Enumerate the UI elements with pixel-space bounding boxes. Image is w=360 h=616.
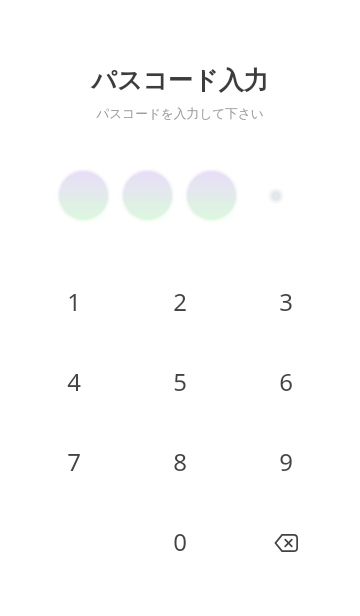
button[interactable]: 4 [21, 341, 127, 421]
staticText: 2 [173, 285, 187, 318]
staticText: 0 [173, 525, 187, 558]
staticText: 6 [279, 365, 293, 398]
button[interactable]: 2 [127, 261, 233, 341]
button[interactable]: 9 [233, 421, 339, 501]
button[interactable]: 6 [233, 341, 339, 421]
button[interactable]: 8 [127, 421, 233, 501]
staticText: 5 [173, 365, 187, 398]
button[interactable]: 7 [21, 421, 127, 501]
staticText: パスコード入力 [91, 65, 269, 96]
staticText: 7 [67, 445, 81, 478]
button[interactable]: Backspace [233, 501, 339, 581]
button[interactable]: 5 [127, 341, 233, 421]
button[interactable]: 3 [233, 261, 339, 341]
button[interactable]: 1 [21, 261, 127, 341]
staticText: 9 [279, 445, 293, 478]
staticText: 8 [173, 445, 187, 478]
button[interactable]: 0 [127, 501, 233, 581]
staticText: 3 [279, 285, 293, 318]
staticText: 4 [67, 365, 81, 398]
staticText: パスコードを入力して下さい [96, 106, 264, 122]
staticText: 1 [67, 285, 81, 318]
